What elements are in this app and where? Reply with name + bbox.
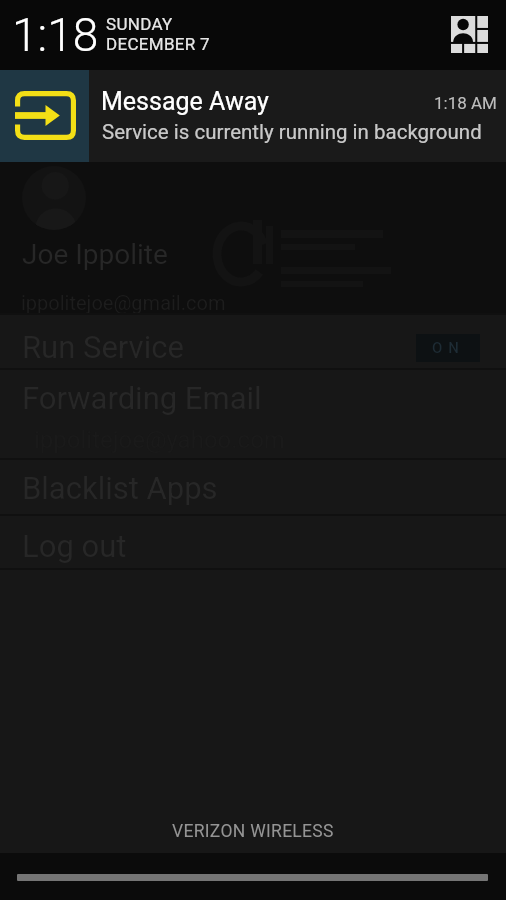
staticText: Run Service	[22, 329, 184, 365]
staticText: Service is currently running in backgrou…	[102, 120, 482, 144]
staticText: Log out	[22, 528, 127, 564]
button[interactable]: Profile photo	[22, 166, 86, 230]
staticText: Forwarding Email	[22, 380, 262, 416]
button[interactable]: Message Away	[0, 70, 506, 162]
staticText: 1:18 AM	[434, 93, 497, 113]
staticText: ippolitejoe@gmail.com	[21, 291, 226, 314]
staticText: ON	[432, 339, 465, 357]
staticText: DECEMBER 7	[106, 34, 210, 54]
staticText: Message Away	[101, 87, 269, 116]
button[interactable]: Quick settings	[451, 16, 488, 53]
staticText: 1:18	[12, 8, 99, 62]
button[interactable]: Blacklist Apps	[0, 460, 506, 515]
button[interactable]: ON	[416, 334, 480, 362]
staticText: Joe Ippolite	[22, 238, 168, 271]
staticText: Blacklist Apps	[22, 470, 218, 506]
button[interactable]: Run Service	[0, 315, 506, 369]
staticText: VERIZON WIRELESS	[172, 821, 334, 842]
staticText: SUNDAY	[106, 14, 173, 34]
button[interactable]: Close notification shade	[0, 853, 506, 900]
